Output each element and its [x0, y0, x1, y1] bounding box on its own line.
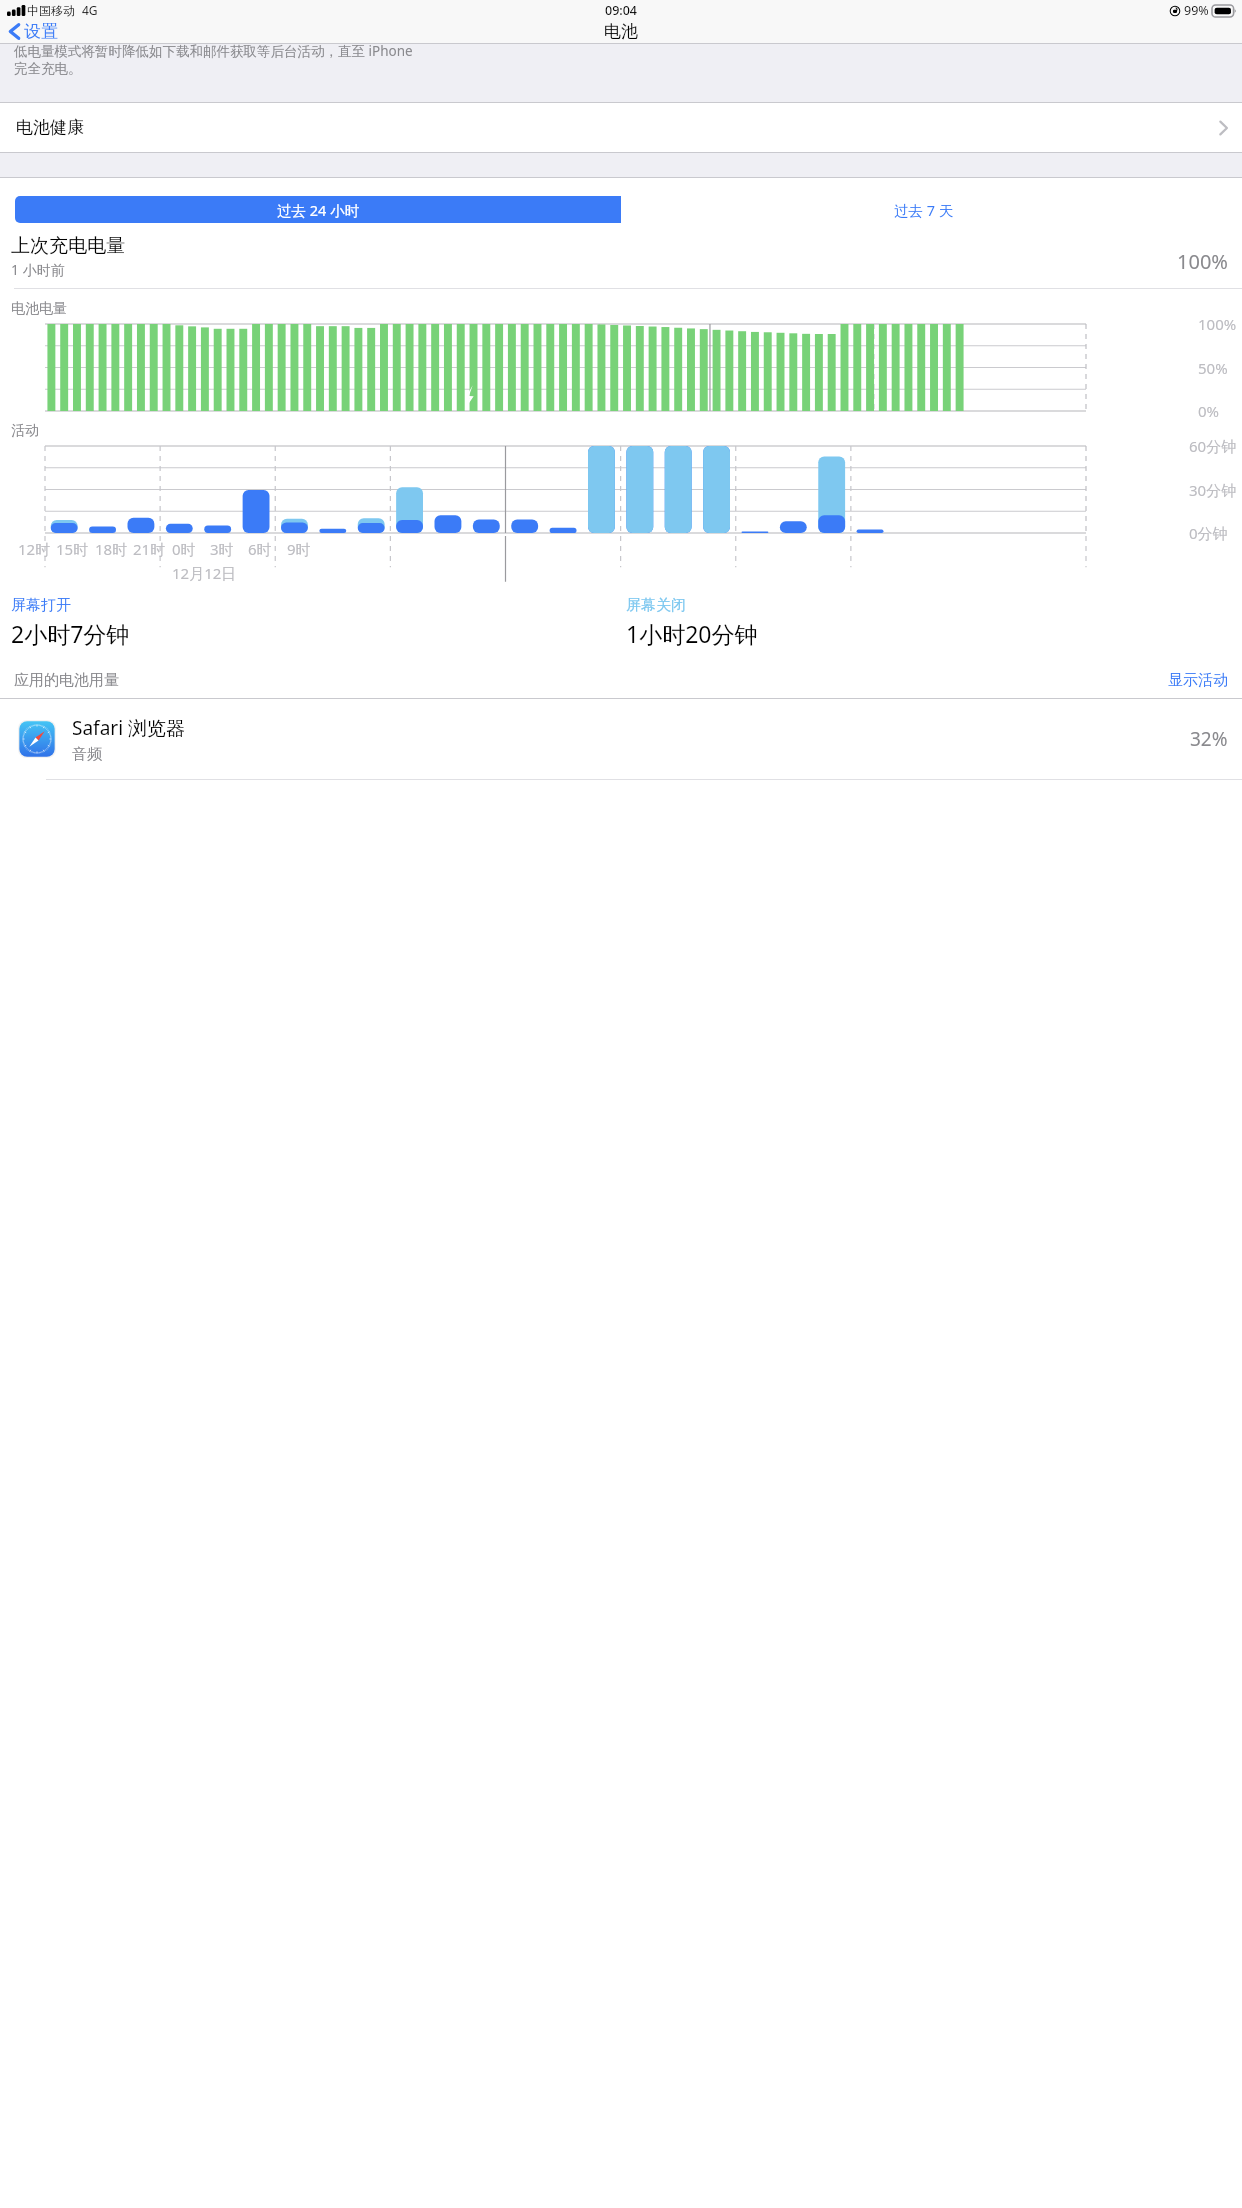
staticText: 3时 [210, 539, 234, 559]
staticText: 完全充电。 [14, 60, 82, 77]
button[interactable]: 过去 7 天 [621, 196, 1227, 223]
staticText: 1小时20分钟 [626, 618, 758, 649]
button[interactable]: 电池健康 [0, 103, 1242, 152]
staticText: 上次充电电量 [11, 234, 125, 258]
staticText: 100% [1198, 314, 1237, 334]
button[interactable]: Safari 浏览器 [0, 699, 1242, 779]
staticText: 电池健康 [16, 117, 84, 138]
staticText: 0时 [172, 539, 196, 559]
staticText: 屏幕关闭 [626, 596, 686, 615]
staticText: 显示活动 [1168, 671, 1228, 690]
staticText: 15时 [56, 539, 89, 559]
staticText: 30分钟 [1189, 480, 1237, 500]
staticText: 50% [1198, 358, 1228, 378]
staticText: 9时 [287, 539, 311, 559]
staticText: 过去 24 小时 [277, 200, 360, 220]
staticText: 100% [1177, 248, 1228, 275]
staticText: 0% [1198, 401, 1220, 421]
staticText: 应用的电池用量 [14, 671, 119, 690]
staticText: 音频 [72, 745, 102, 764]
staticText: 12时 [18, 539, 51, 559]
staticText: 99% [1184, 2, 1209, 19]
staticText: 1 小时前 [11, 260, 65, 279]
staticText: 过去 7 天 [894, 200, 954, 220]
staticText: 设置 [24, 21, 58, 42]
staticText: 活动 [11, 422, 39, 440]
staticText: 4G [82, 2, 98, 18]
staticText: 12月12日 [172, 563, 237, 583]
staticText: 低电量模式将暂时降低如下载和邮件获取等后台活动，直至 iPhone [14, 42, 413, 60]
staticText: 32% [1190, 726, 1228, 752]
staticText: 09:04 [605, 2, 638, 19]
staticText: 0分钟 [1189, 523, 1228, 543]
staticText: 21时 [133, 539, 166, 559]
button[interactable]: 返回 设置 [9, 21, 58, 42]
staticText: Safari 浏览器 [72, 715, 185, 741]
button[interactable]: 显示活动 [1168, 671, 1228, 690]
button[interactable]: 过去 24 小时 [15, 196, 621, 223]
staticText: 中国移动 [27, 3, 75, 18]
staticText: 18时 [95, 539, 128, 559]
staticText: 60分钟 [1189, 436, 1237, 456]
staticText: 6时 [248, 539, 272, 559]
staticText: 电池 [604, 21, 638, 42]
staticText: 电池电量 [11, 300, 67, 318]
staticText: 2小时7分钟 [11, 618, 130, 649]
staticText: 屏幕打开 [11, 596, 71, 615]
